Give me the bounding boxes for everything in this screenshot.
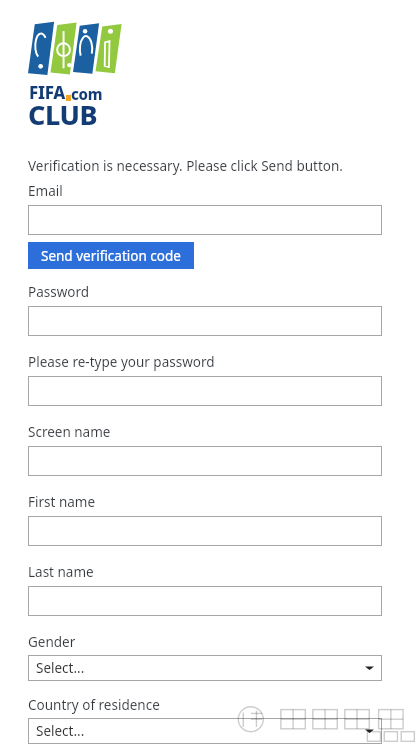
staticText: Select... [36, 722, 85, 740]
button[interactable] [28, 446, 382, 476]
staticText: CLUB [28, 96, 98, 133]
button[interactable]: Select... [28, 718, 382, 744]
button[interactable] [28, 376, 382, 406]
button[interactable] [28, 586, 382, 616]
staticText: FIFA [29, 81, 66, 104]
staticText: Select... [36, 659, 85, 677]
staticText: com [71, 84, 103, 104]
staticText: Screen name [28, 423, 111, 441]
staticText: Please re-type your password [28, 353, 215, 371]
button[interactable] [28, 306, 382, 336]
staticText: Send verification code [41, 247, 181, 265]
button[interactable]: Send verification code [28, 242, 194, 269]
staticText: Gender [28, 633, 76, 651]
staticText: First name [28, 493, 96, 511]
staticText: Country of residence [28, 696, 160, 714]
staticText: Last name [28, 563, 94, 581]
button[interactable]: Select... [28, 655, 382, 681]
button[interactable] [28, 205, 382, 235]
button[interactable] [28, 516, 382, 546]
staticText: Verification is necessary. Please click … [28, 157, 343, 175]
staticText: Password [28, 283, 90, 301]
staticText: Email [28, 182, 63, 200]
